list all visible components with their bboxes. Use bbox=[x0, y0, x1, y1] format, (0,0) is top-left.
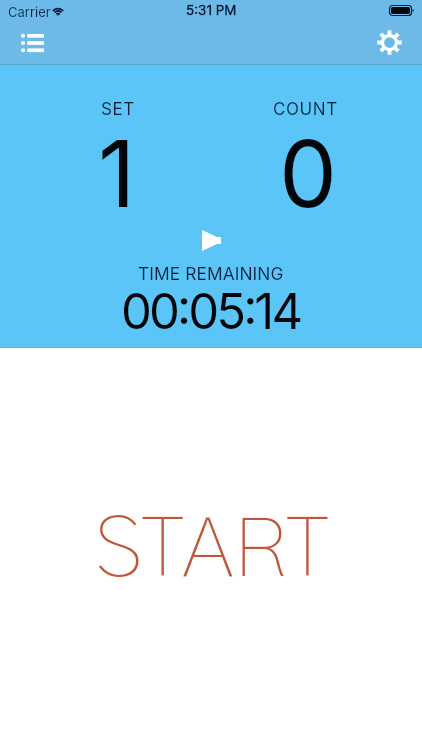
button[interactable]: Settings bbox=[366, 20, 412, 65]
staticText: 5:31 PM bbox=[186, 2, 237, 18]
staticText: 00:05:14 bbox=[121, 282, 301, 341]
staticText: Carrier bbox=[8, 4, 51, 20]
staticText: 0 bbox=[279, 118, 338, 229]
staticText: COUNT bbox=[273, 99, 338, 120]
staticText: 1 bbox=[98, 118, 136, 229]
button[interactable]: Workout list bbox=[9, 20, 55, 65]
staticText: START bbox=[94, 508, 329, 593]
staticText: TIME REMAINING bbox=[138, 263, 284, 284]
button[interactable]: START bbox=[0, 348, 422, 750]
staticText: SET bbox=[101, 99, 135, 120]
